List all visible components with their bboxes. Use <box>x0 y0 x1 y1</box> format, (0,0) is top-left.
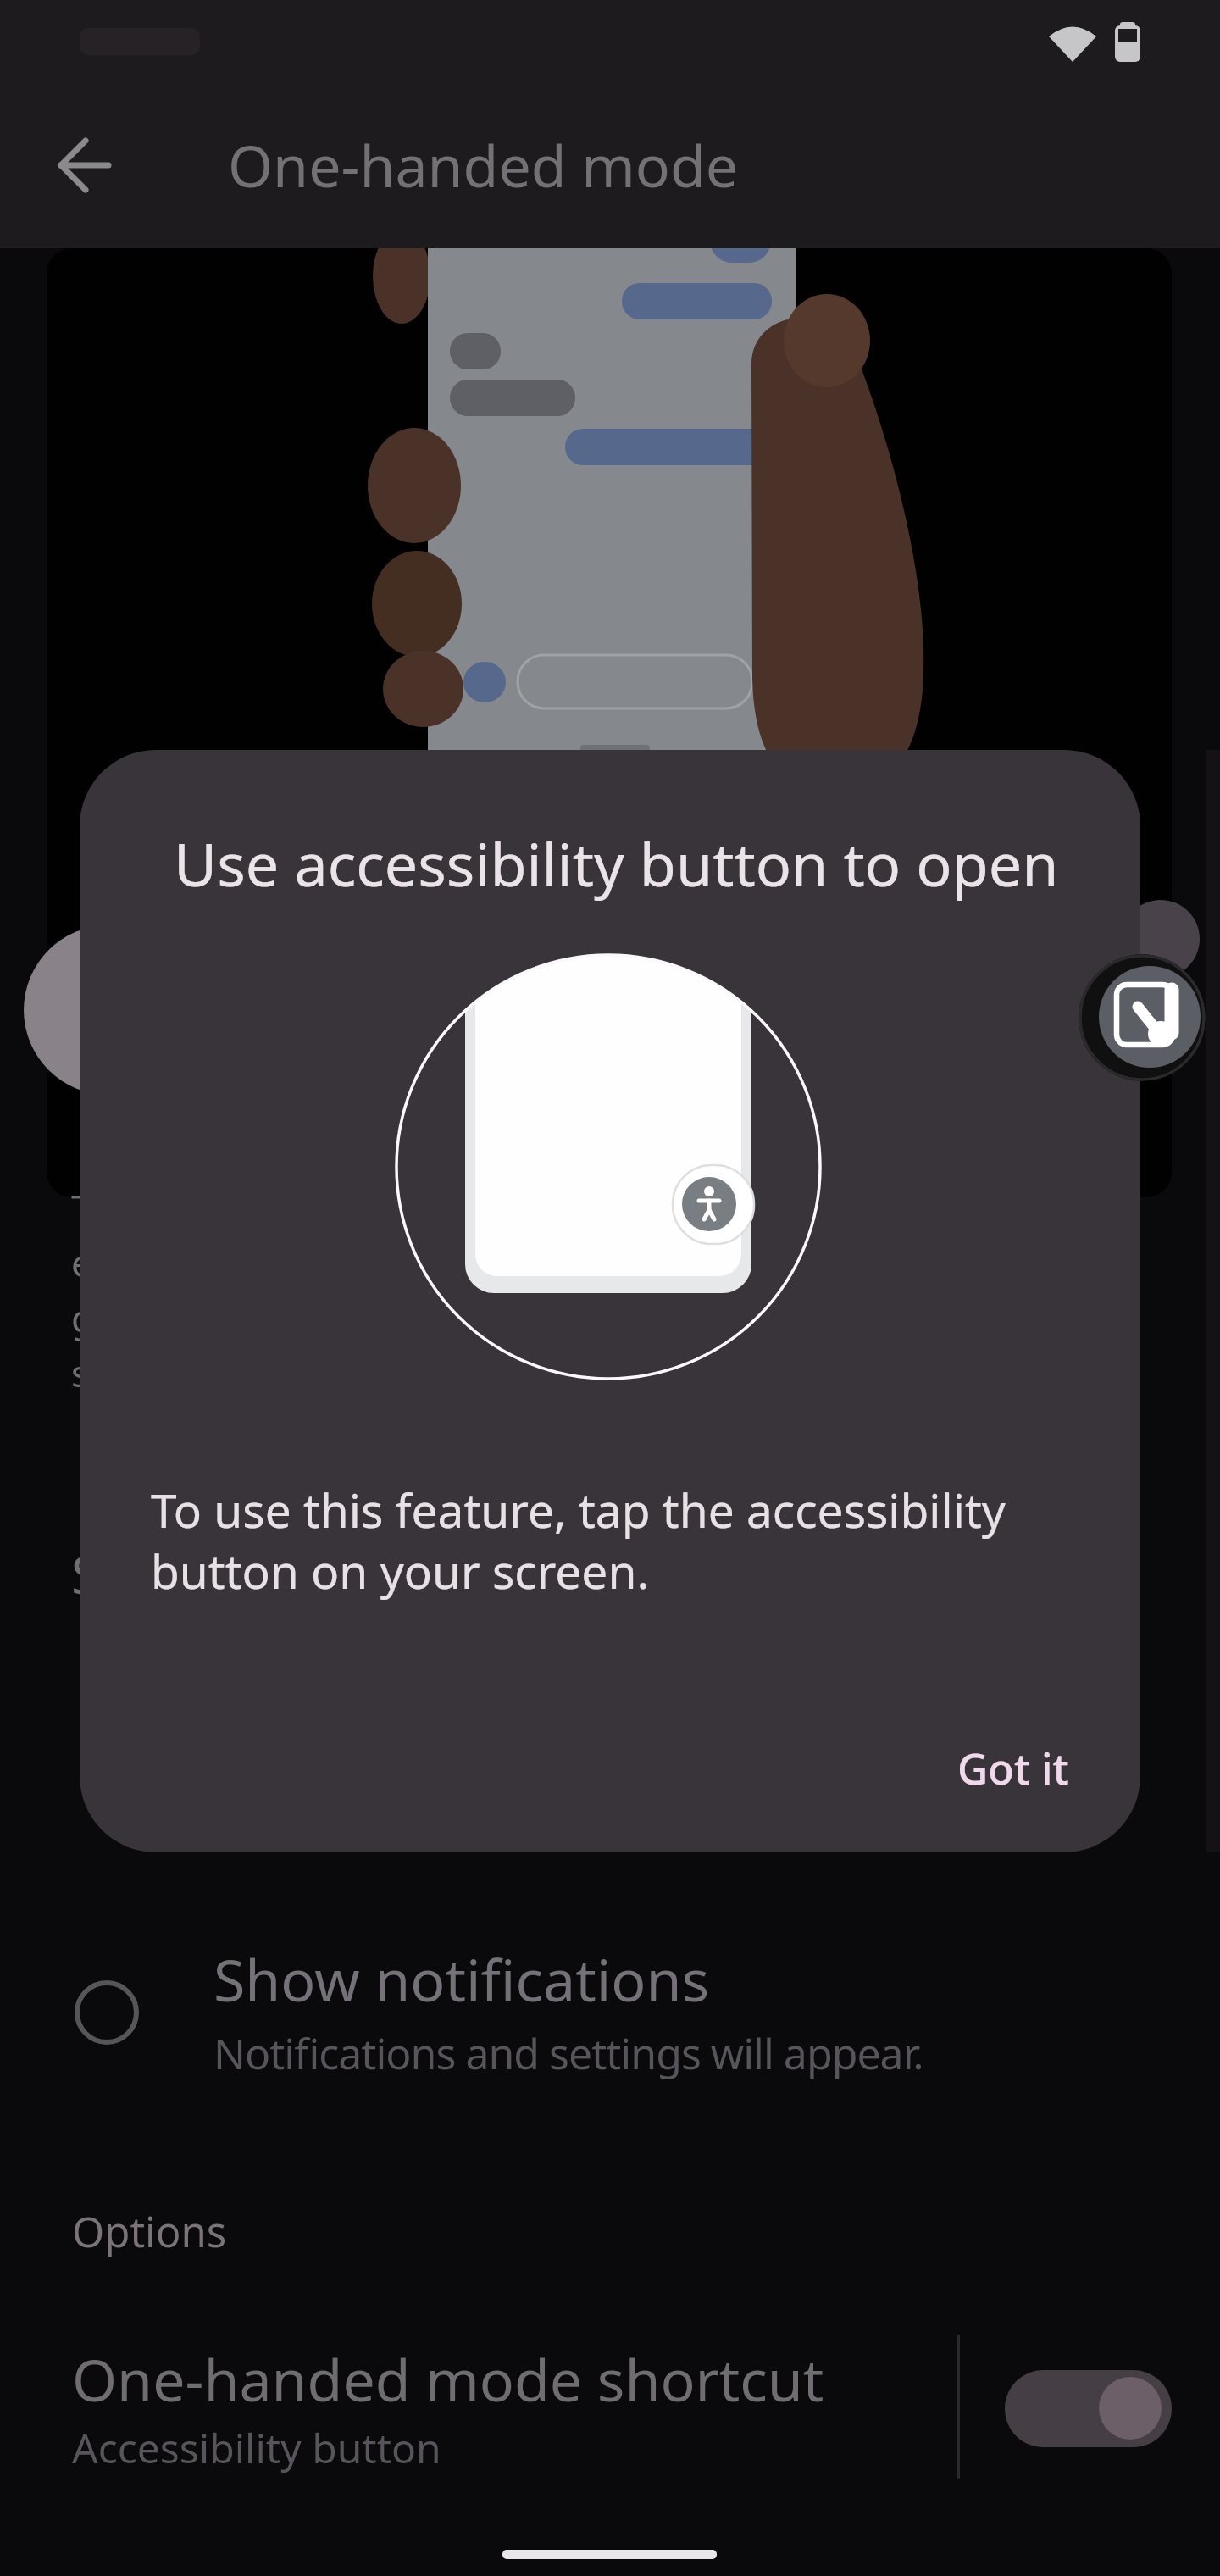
staticText: Notifications and settings will appear. <box>213 2024 923 2082</box>
staticText: Accessibility button <box>72 2420 441 2475</box>
staticText: One-handed mode shortcut <box>72 2340 824 2418</box>
staticText: T e g s <box>71 1182 80 1398</box>
staticText: Show notifications <box>213 1940 710 2018</box>
staticText: Options <box>72 2203 227 2260</box>
button[interactable] <box>1000 2364 1173 2453</box>
staticText: Got it <box>957 1740 1069 1797</box>
button[interactable] <box>38 123 131 216</box>
staticText: One-handed mode <box>228 125 739 204</box>
staticText: button on your screen. <box>151 1539 650 1602</box>
staticText: Use accessibility button to open <box>174 823 1059 903</box>
staticText: S <box>71 1538 80 1609</box>
button[interactable] <box>51 1932 932 2093</box>
button[interactable] <box>51 2313 932 2483</box>
button[interactable] <box>1079 954 1206 1081</box>
staticText: To use this feature, tap the accessibili… <box>151 1478 1006 1541</box>
button[interactable]: Got it <box>923 1720 1110 1822</box>
